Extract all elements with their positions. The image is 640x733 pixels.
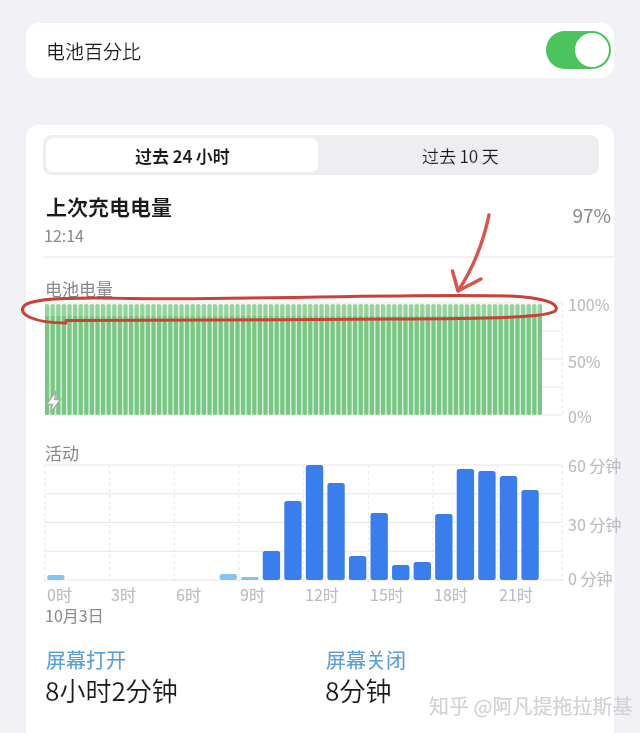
staticText: 屏幕关闭 xyxy=(326,645,406,674)
staticText: 9时 xyxy=(240,582,265,605)
staticText: 60 分钟 xyxy=(568,453,622,476)
button[interactable] xyxy=(546,31,611,69)
staticText: 15时 xyxy=(370,582,404,605)
staticText: 97% xyxy=(500,201,611,229)
staticText: 10月3日 xyxy=(45,603,104,626)
staticText: 30 分钟 xyxy=(568,512,622,535)
staticText: 知乎 @阿凡提拖拉斯基 xyxy=(429,691,633,720)
staticText: 100% xyxy=(568,292,610,315)
staticText: 电池百分比 xyxy=(46,37,142,65)
staticText: 8分钟 xyxy=(325,671,392,709)
button[interactable] xyxy=(26,23,614,78)
staticText: 电池电量 xyxy=(45,276,113,301)
staticText: 50% xyxy=(568,349,601,372)
staticText: 12:14 xyxy=(44,223,84,246)
staticText: 屏幕打开 xyxy=(46,645,126,674)
staticText: 过去 10 天 xyxy=(422,143,499,168)
staticText: 0 分钟 xyxy=(568,566,613,589)
button[interactable]: 过去 10 天 xyxy=(321,135,599,175)
staticText: 6时 xyxy=(176,582,201,605)
staticText: 0时 xyxy=(47,582,72,605)
staticText: 活动 xyxy=(45,440,79,465)
staticText: 21时 xyxy=(499,582,533,605)
staticText: 0% xyxy=(568,404,592,427)
staticText: 12时 xyxy=(305,582,339,605)
staticText: 8小时2分钟 xyxy=(45,671,178,709)
staticText: 上次充电电量 xyxy=(46,191,172,221)
staticText: 18时 xyxy=(434,582,468,605)
staticText: 过去 24 小时 xyxy=(135,143,230,168)
button[interactable]: 过去 24 小时 xyxy=(46,138,318,172)
staticText: 3时 xyxy=(111,582,136,605)
